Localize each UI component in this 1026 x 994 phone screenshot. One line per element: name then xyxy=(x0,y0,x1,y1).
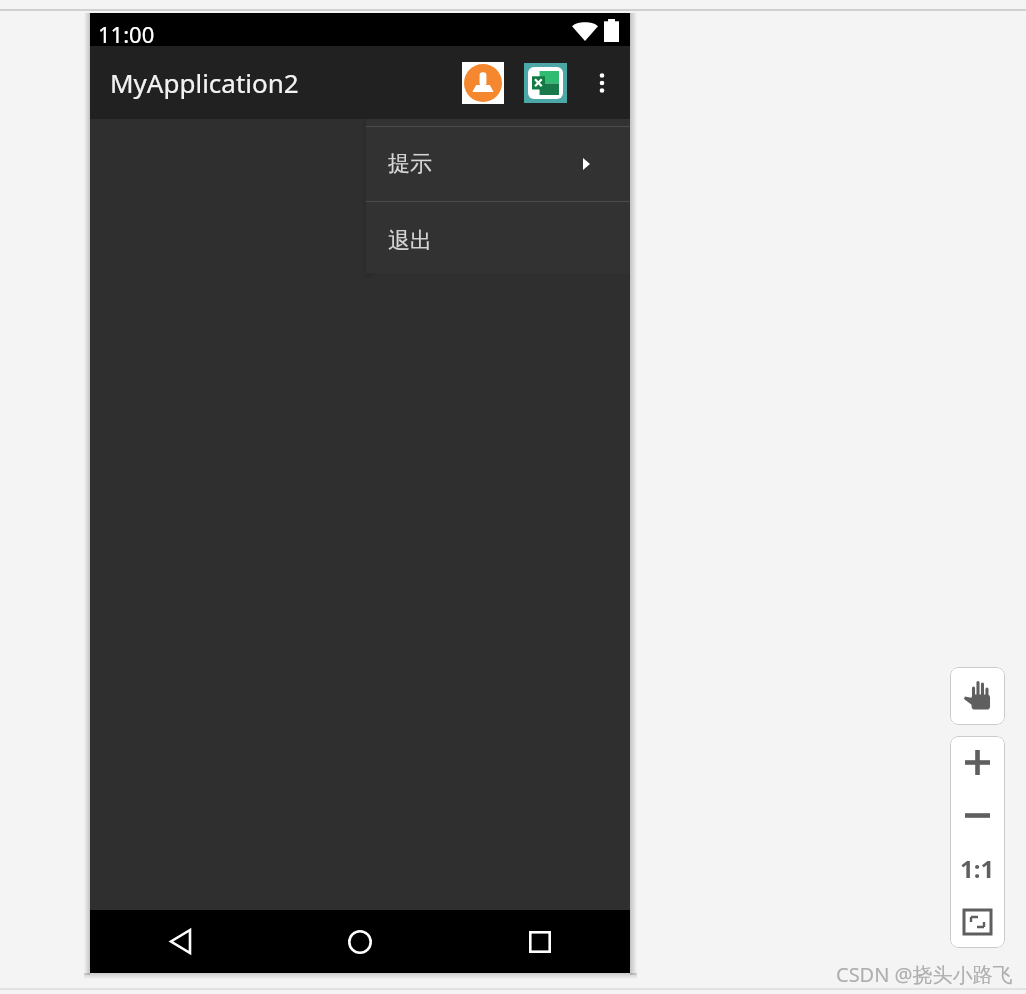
staticText: 1:1 xyxy=(960,852,995,885)
button[interactable]: More options xyxy=(577,58,627,108)
staticText: CSDN @挠头小路飞 xyxy=(836,961,1013,988)
button[interactable]: Zoom in xyxy=(950,736,1005,789)
button[interactable]: Zoom out xyxy=(950,789,1005,842)
button[interactable]: Recents xyxy=(450,910,630,973)
button[interactable]: Account xyxy=(457,57,509,109)
button[interactable]: Pan xyxy=(950,667,1005,725)
staticText: 退出 xyxy=(388,227,432,255)
button[interactable]: Fit to screen xyxy=(950,895,1005,948)
button[interactable]: 提示 xyxy=(366,127,630,201)
button[interactable]: Back xyxy=(90,910,270,973)
button[interactable]: Actual size xyxy=(950,842,1005,895)
staticText: MyApplication2 xyxy=(110,65,299,100)
button[interactable]: 退出 xyxy=(366,202,630,273)
button[interactable]: Home xyxy=(270,910,450,973)
button[interactable]: Spreadsheet xyxy=(519,57,571,109)
staticText: 11:00 xyxy=(98,19,155,46)
staticText: 提示 xyxy=(388,150,432,178)
